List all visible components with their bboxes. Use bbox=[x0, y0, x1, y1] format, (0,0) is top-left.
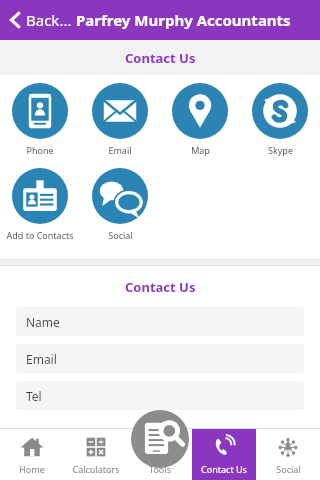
button[interactable]: Phone bbox=[0, 81, 80, 158]
staticText: Home bbox=[19, 463, 45, 475]
staticText: Contact Us bbox=[125, 278, 196, 296]
button[interactable]: Name bbox=[16, 307, 304, 336]
staticText: Back... bbox=[26, 10, 72, 30]
staticText: Contact Us bbox=[125, 49, 196, 67]
staticText: Email bbox=[108, 144, 132, 156]
button[interactable]: Social bbox=[256, 429, 320, 480]
button[interactable]: Home bbox=[0, 429, 64, 480]
staticText: Calculators bbox=[72, 463, 120, 475]
staticText: Tools bbox=[149, 463, 171, 475]
staticText: Contact Us bbox=[201, 463, 247, 475]
staticText: Social bbox=[276, 463, 301, 475]
button[interactable]: Email bbox=[80, 81, 160, 158]
button[interactable]: Email bbox=[16, 344, 304, 373]
staticText: Tel bbox=[26, 388, 42, 404]
button[interactable]: Tools bbox=[131, 410, 189, 468]
staticText: Map bbox=[191, 144, 210, 156]
staticText: Parfrey Murphy Accountants bbox=[76, 10, 291, 30]
staticText: Name bbox=[26, 314, 60, 330]
button[interactable]: Add to Contacts bbox=[0, 166, 80, 243]
staticText: Skype bbox=[268, 144, 293, 156]
button[interactable]: Map bbox=[160, 81, 240, 158]
button[interactable]: Contact Us bbox=[192, 429, 256, 480]
button[interactable]: Skype bbox=[240, 81, 320, 158]
staticText: Phone bbox=[26, 144, 54, 156]
button[interactable]: Social bbox=[80, 166, 160, 243]
button[interactable]: Tools bbox=[128, 429, 192, 480]
button[interactable]: Tel bbox=[16, 381, 304, 410]
button[interactable]: Calculators bbox=[64, 429, 128, 480]
staticText: Social bbox=[108, 229, 133, 241]
staticText: Email bbox=[26, 351, 57, 367]
staticText: Add to Contacts bbox=[6, 229, 74, 241]
button[interactable]: Back bbox=[0, 10, 76, 30]
